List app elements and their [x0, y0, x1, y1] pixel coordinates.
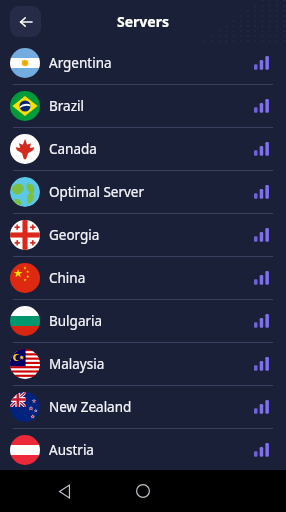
- staticText: Argentina: [49, 54, 254, 72]
- button[interactable]: Malaysia: [0, 343, 286, 385]
- button[interactable]: Georgia: [0, 214, 286, 256]
- button[interactable]: Bulgaria: [0, 300, 286, 342]
- staticText: Georgia: [49, 226, 254, 244]
- button[interactable]: Back: [10, 6, 41, 37]
- button[interactable]: Home: [115, 470, 171, 512]
- staticText: Optimal Server: [49, 183, 254, 201]
- staticText: China: [49, 269, 254, 287]
- button[interactable]: Canada: [0, 128, 286, 170]
- staticText: Austria: [49, 441, 254, 459]
- staticText: Servers: [117, 12, 169, 31]
- button[interactable]: Austria: [0, 429, 286, 470]
- button[interactable]: Optimal Server: [0, 171, 286, 213]
- staticText: New Zealand: [49, 398, 254, 416]
- button[interactable]: New Zealand: [0, 386, 286, 428]
- staticText: Malaysia: [49, 355, 254, 373]
- staticText: Canada: [49, 140, 254, 158]
- button[interactable]: Back: [0, 470, 129, 512]
- staticText: Brazil: [49, 97, 254, 115]
- staticText: Bulgaria: [49, 312, 254, 330]
- button[interactable]: Argentina: [0, 42, 286, 84]
- button[interactable]: China: [0, 257, 286, 299]
- button[interactable]: Brazil: [0, 85, 286, 127]
